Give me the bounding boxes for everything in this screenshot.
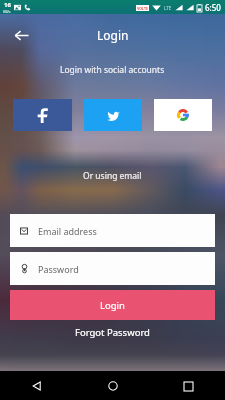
button[interactable]: Back xyxy=(24,373,50,399)
staticText: Login xyxy=(100,299,125,312)
button[interactable]: Email address xyxy=(10,214,215,247)
button[interactable]: Forgot Password xyxy=(0,324,225,340)
button[interactable]: Login xyxy=(10,290,215,320)
staticText: 16 xyxy=(4,1,11,9)
button[interactable]: Sign in with Facebook xyxy=(13,99,72,131)
staticText: Login xyxy=(97,27,129,43)
staticText: Forgot Password xyxy=(75,326,150,339)
staticText: Or using email xyxy=(83,170,142,182)
button[interactable]: Sign in with Twitter xyxy=(84,99,142,131)
button[interactable]: Recent apps xyxy=(175,373,201,399)
staticText: KB/s xyxy=(3,9,11,14)
staticText: Password xyxy=(38,263,79,275)
staticText: 6:50 xyxy=(205,2,221,13)
staticText: Login with social accounts xyxy=(60,64,165,76)
button[interactable]: Sign in with Google xyxy=(154,99,212,131)
button[interactable]: Back xyxy=(8,22,34,48)
button[interactable]: Home xyxy=(100,373,126,399)
staticText: Email address xyxy=(38,225,97,237)
button[interactable]: Password xyxy=(10,252,215,285)
staticText: VOLTE xyxy=(137,6,148,11)
staticText: LTE xyxy=(164,5,172,11)
